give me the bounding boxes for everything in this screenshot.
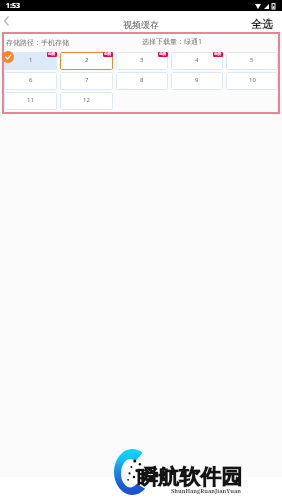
button[interactable]: 全选 <box>243 14 282 34</box>
staticText: 1:53 <box>6 1 20 11</box>
staticText: 免费 <box>159 52 167 57</box>
button[interactable]: 6 <box>4 72 57 90</box>
button[interactable]: 10 <box>226 72 278 90</box>
staticText: 2 <box>85 56 89 64</box>
staticText: 7 <box>85 76 89 84</box>
button[interactable]: 7 <box>60 72 113 90</box>
staticText: 6 <box>29 76 33 84</box>
staticText: 免费 <box>104 52 112 57</box>
staticText: 4 <box>195 56 199 64</box>
staticText: 全选 <box>251 17 273 31</box>
button[interactable]: Back <box>0 11 20 32</box>
button[interactable]: 4 <box>171 52 223 70</box>
button[interactable]: 12 <box>60 92 113 110</box>
button[interactable]: 8 <box>116 72 168 90</box>
button[interactable]: 5 <box>226 52 278 70</box>
staticText: 瞬航软件园 <box>137 464 242 490</box>
button[interactable]: 3 <box>116 52 168 70</box>
button[interactable]: 1 <box>4 52 57 70</box>
staticText: 1 <box>29 56 33 64</box>
staticText: 9 <box>195 76 199 84</box>
staticText: 选择下载量：绿通1 <box>142 37 203 47</box>
staticText: 免费 <box>48 52 56 57</box>
staticText: 8 <box>140 76 144 84</box>
staticText: 存储路径：手机存储 <box>6 38 69 47</box>
staticText: 5 <box>250 56 254 64</box>
staticText: 免费 <box>214 52 222 57</box>
staticText: 视频缓存 <box>123 19 159 30</box>
button[interactable]: 11 <box>4 92 57 110</box>
button[interactable]: 9 <box>171 72 223 90</box>
staticText: ShunHangRuanJianYuan <box>171 487 242 495</box>
button[interactable]: 2 <box>60 52 113 70</box>
staticText: 10 <box>249 76 256 84</box>
staticText: 12 <box>83 96 90 104</box>
staticText: 3 <box>140 56 144 64</box>
staticText: 11 <box>27 96 34 104</box>
